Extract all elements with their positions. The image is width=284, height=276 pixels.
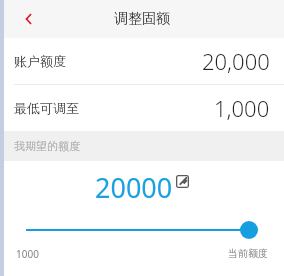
staticText: 当前额度 <box>228 247 268 260</box>
button[interactable]: Amount slider <box>26 213 258 247</box>
button[interactable]: 账户额度 <box>0 38 284 84</box>
button[interactable]: Back <box>14 4 44 34</box>
staticText: 20000 <box>95 169 173 206</box>
staticText: 1,000 <box>214 93 270 123</box>
staticText: 20,000 <box>202 46 270 76</box>
button[interactable]: 最低可调至 <box>0 85 284 131</box>
staticText: 最低可调至 <box>14 100 79 116</box>
staticText: 我期望的额度 <box>14 139 80 153</box>
staticText: 1000 <box>16 247 39 261</box>
button[interactable]: 20000 <box>91 169 193 206</box>
other: Edit amount <box>176 175 189 188</box>
staticText: 账户额度 <box>14 53 66 69</box>
staticText: 调整固额 <box>114 10 170 28</box>
